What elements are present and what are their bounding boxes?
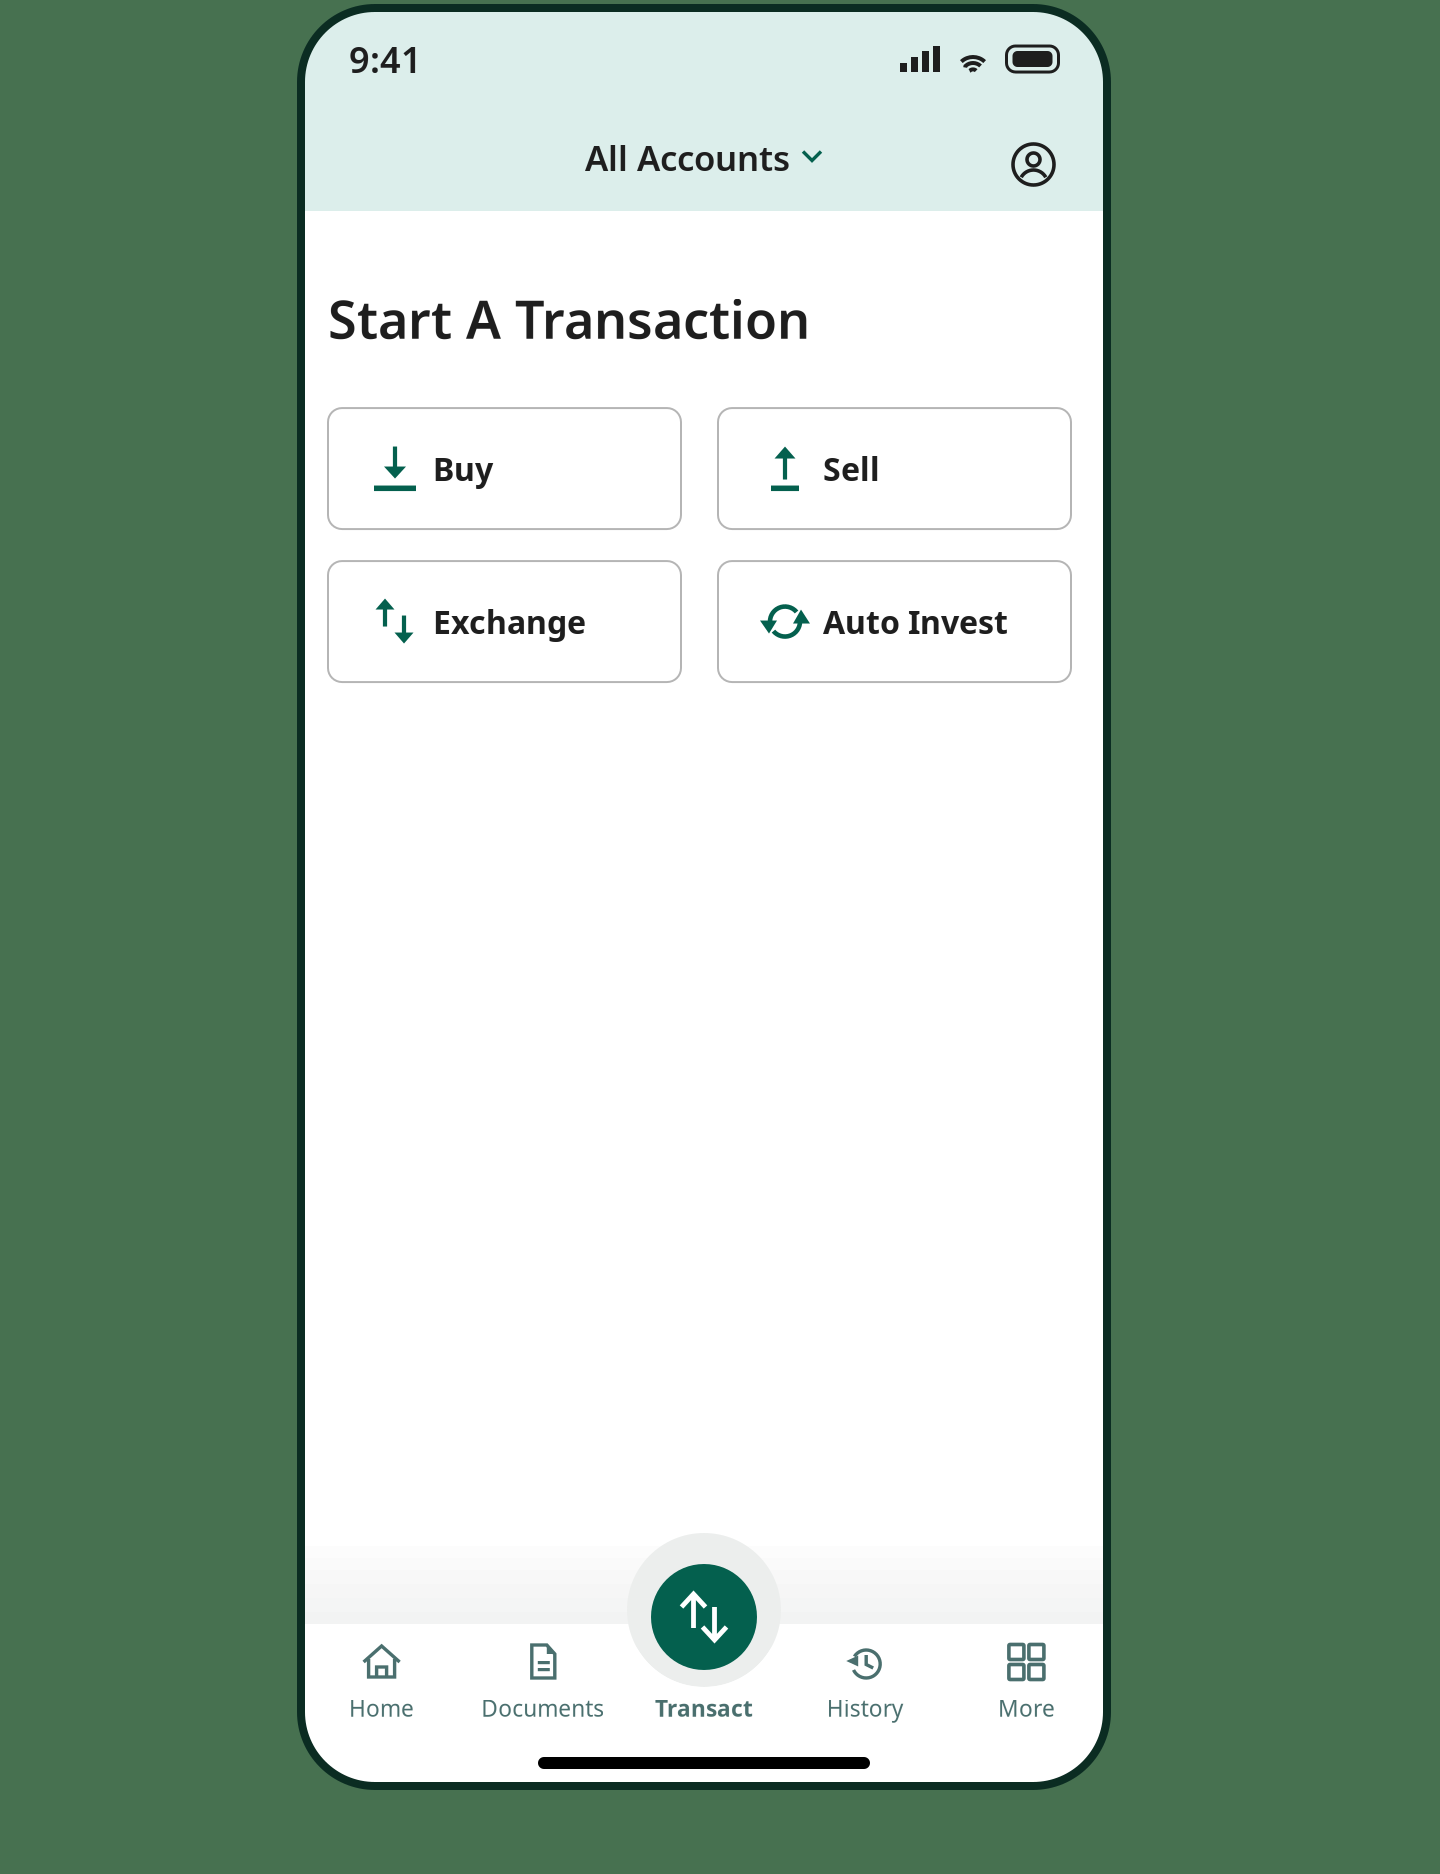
- button[interactable]: More: [946, 1624, 1107, 1786]
- button[interactable]: Buy: [328, 408, 681, 529]
- staticText: All Accounts: [585, 134, 790, 180]
- staticText: Transact: [655, 1693, 753, 1723]
- button[interactable]: History: [785, 1624, 946, 1786]
- button[interactable]: Documents: [462, 1624, 623, 1786]
- staticText: History: [827, 1693, 904, 1723]
- button[interactable]: Transact: [651, 1564, 757, 1670]
- button[interactable]: Transact: [623, 1624, 785, 1786]
- button[interactable]: Home: [301, 1624, 462, 1786]
- staticText: Home: [349, 1693, 414, 1723]
- staticText: Exchange: [433, 600, 586, 643]
- button[interactable]: Exchange: [328, 561, 681, 682]
- button[interactable]: Auto Invest: [718, 561, 1071, 682]
- staticText: Auto Invest: [823, 600, 1008, 643]
- staticText: Documents: [481, 1693, 604, 1723]
- staticText: Sell: [823, 447, 880, 490]
- button[interactable]: Profile: [1003, 134, 1064, 195]
- staticText: Buy: [433, 447, 493, 490]
- button[interactable]: All Accounts: [573, 122, 835, 192]
- staticText: More: [998, 1693, 1055, 1723]
- button[interactable]: Sell: [718, 408, 1071, 529]
- staticText: 9:41: [349, 35, 422, 83]
- staticText: Start A Transaction: [328, 284, 810, 353]
